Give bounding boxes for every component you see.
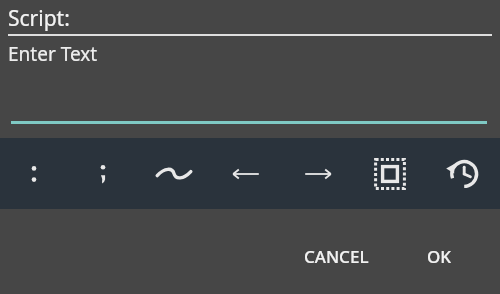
button[interactable]: History [426,138,500,209]
button[interactable]: Enter Text [8,41,500,119]
button[interactable]: OK [415,237,464,276]
button[interactable]: Semicolon [68,138,138,209]
staticText: OK [427,245,452,268]
button[interactable]: Colon [0,138,68,209]
button[interactable]: Move left [210,138,282,209]
button[interactable]: Select all [354,138,426,209]
staticText: Enter Text [8,41,98,67]
button[interactable]: Tilde [138,138,210,209]
button[interactable]: Move right [282,138,354,209]
button[interactable]: CANCEL [292,237,381,276]
staticText: Script: [8,4,70,33]
staticText: CANCEL [304,245,369,268]
